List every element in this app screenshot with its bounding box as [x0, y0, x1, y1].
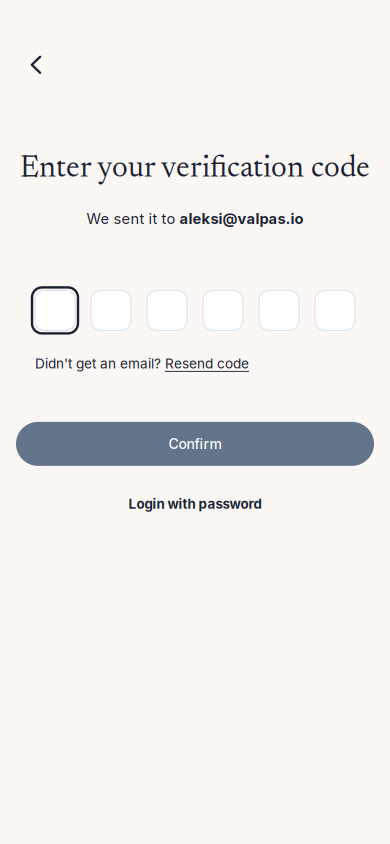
button[interactable]: Resend code — [165, 355, 249, 372]
staticText: We sent it to — [86, 210, 179, 227]
staticText: Login with password — [128, 496, 261, 512]
button[interactable]: Back — [14, 43, 58, 87]
staticText: Resend code — [165, 355, 249, 372]
staticText: Confirm — [168, 435, 221, 452]
staticText: Didn't get an email? — [35, 355, 161, 372]
button[interactable]: Login with password — [16, 484, 374, 524]
staticText: aleksi@valpas.io — [179, 210, 303, 227]
button[interactable]: Confirm — [16, 422, 374, 466]
staticText: Enter your verification code — [20, 154, 370, 185]
